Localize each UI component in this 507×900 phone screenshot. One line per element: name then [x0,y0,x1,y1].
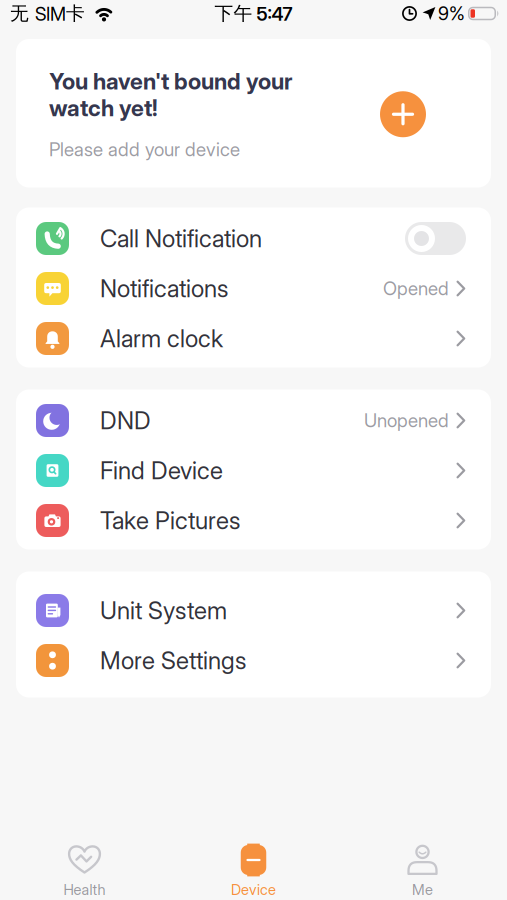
button[interactable]: Device [169,842,338,898]
staticText: Please add your device [49,138,240,160]
button[interactable]: Take Pictures [16,495,491,545]
staticText: Find Device [100,456,223,485]
staticText: Me [412,881,433,898]
button[interactable]: Me [338,842,507,898]
staticText: DND [100,406,151,435]
button[interactable]: Add device [380,91,426,137]
staticText: Alarm clock [100,324,223,353]
staticText: More Settings [100,646,246,675]
button[interactable]: Call Notification [16,213,491,263]
staticText: You haven't bound your watch yet! [49,68,292,121]
staticText: Unopened [364,409,449,431]
staticText: 无 SIM卡 [10,2,85,25]
button[interactable]: DND [16,395,491,445]
button[interactable]: More Settings [16,635,491,685]
staticText: Opened [383,277,449,299]
button[interactable]: Find Device [16,445,491,495]
button[interactable]: Alarm clock [16,313,491,363]
staticText: Device [231,881,276,898]
staticText: Call Notification [100,224,262,253]
staticText: Health [63,881,105,898]
staticText: 下午 5:47 [214,2,292,25]
staticText: 9% [438,2,465,24]
button[interactable]: Unit System [16,585,491,635]
staticText: Notifications [100,274,228,303]
staticText: Unit System [100,596,227,625]
button[interactable]: Health [0,842,169,898]
staticText: Take Pictures [100,506,240,535]
button[interactable]: Notifications [16,263,491,313]
